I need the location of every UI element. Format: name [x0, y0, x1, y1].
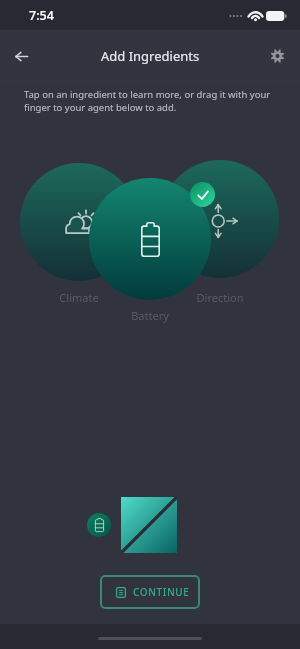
- button[interactable]: Battery ingredient: [87, 513, 111, 537]
- staticText: CONTINUE: [133, 585, 190, 599]
- button[interactable]: [20, 163, 138, 281]
- button[interactable]: Settings: [260, 39, 294, 73]
- staticText: Tap on an ingredient to learn more, or d…: [24, 88, 271, 114]
- staticText: 7:54: [29, 7, 54, 24]
- button[interactable]: [161, 160, 279, 278]
- staticText: Add Ingredients: [101, 47, 200, 65]
- staticText: Direction: [161, 290, 279, 305]
- staticText: Battery: [89, 308, 211, 323]
- button[interactable]: Back: [2, 38, 38, 74]
- staticText: Climate: [20, 290, 138, 305]
- button[interactable]: [89, 178, 211, 300]
- button[interactable]: Agent: [121, 497, 177, 553]
- button[interactable]: CONTINUE: [100, 575, 200, 609]
